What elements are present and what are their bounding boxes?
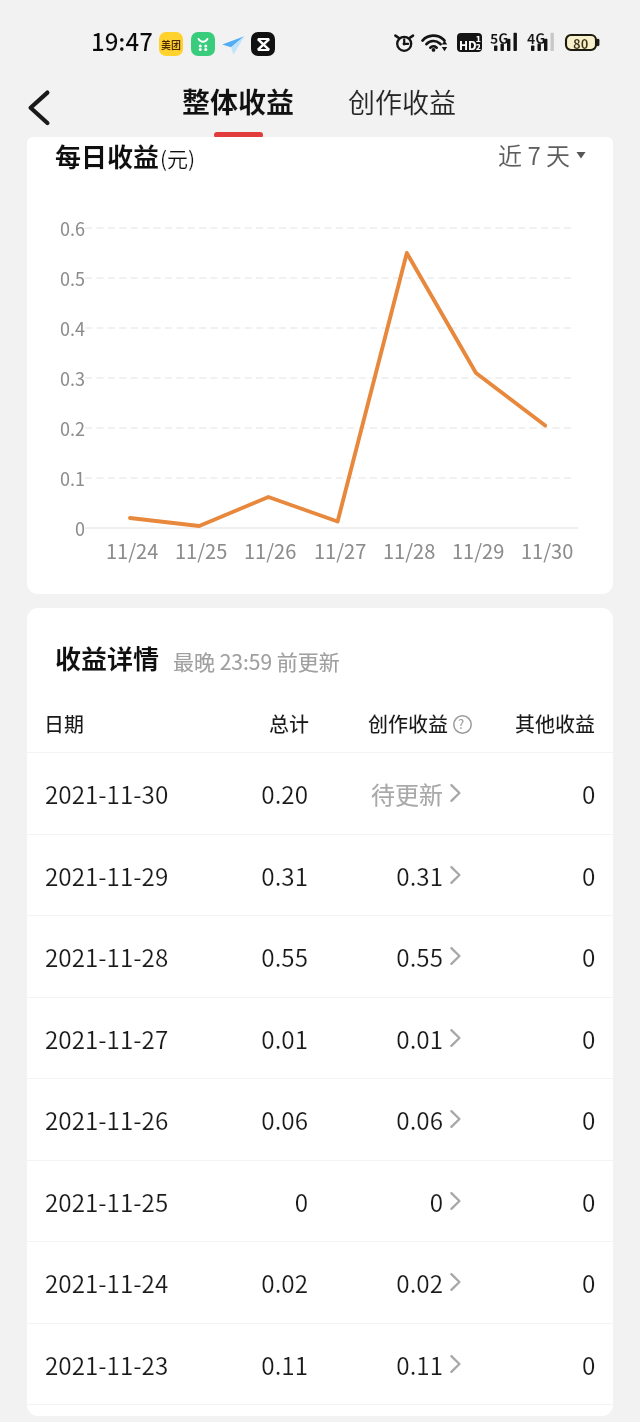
staticText: 0.11	[347, 1347, 443, 1382]
staticText: 80	[573, 34, 589, 51]
staticText: 0	[347, 1184, 443, 1219]
staticText: 0	[582, 1265, 596, 1300]
staticText: 近 7 天	[498, 137, 571, 171]
staticText: 每日收益	[55, 137, 160, 175]
staticText: 其他收益	[515, 709, 595, 738]
staticText: 11/27	[314, 536, 367, 564]
staticText: 0	[582, 1102, 596, 1137]
staticText: 0.06	[243, 1102, 308, 1137]
staticText: 0.20	[243, 776, 308, 811]
staticText: 创作收益	[348, 82, 456, 121]
staticText: 0.01	[347, 1021, 443, 1056]
staticText: 2021-11-24	[45, 1265, 169, 1300]
staticText: 0.55	[347, 939, 443, 974]
staticText: ?	[458, 714, 465, 733]
staticText: 0.1	[60, 465, 85, 491]
staticText: 创作收益	[368, 709, 448, 738]
button[interactable]: 近 7 天	[498, 137, 588, 171]
staticText: 0.6	[60, 215, 85, 241]
staticText: 0.06	[347, 1102, 443, 1137]
staticText: 11/29	[452, 536, 505, 564]
staticText: 2021-11-28	[45, 939, 169, 974]
staticText: 0.02	[347, 1265, 443, 1300]
staticText: 0.11	[243, 1347, 308, 1382]
staticText: 收益详情	[55, 639, 160, 677]
staticText: 11/30	[521, 536, 574, 564]
button[interactable]: 2021-11-24	[27, 1242, 613, 1322]
staticText: 0.3	[60, 365, 85, 391]
staticText: 2021-11-29	[45, 858, 169, 893]
button[interactable]: 2021-11-26	[27, 1079, 613, 1159]
staticText: 0.31	[243, 858, 308, 893]
staticText: (元)	[160, 143, 196, 173]
staticText: 11/28	[383, 536, 436, 564]
staticText: 美团	[161, 37, 181, 51]
staticText: 0	[582, 1021, 596, 1056]
staticText: 2021-11-23	[45, 1347, 169, 1382]
staticText: 11/25	[175, 536, 228, 564]
button[interactable]: Back	[16, 84, 62, 130]
staticText: 0	[243, 1184, 308, 1219]
staticText: 0.2	[60, 415, 85, 441]
staticText: 总计	[269, 709, 309, 738]
button[interactable]: 2021-11-23	[27, 1324, 613, 1404]
staticText: 0	[582, 1184, 596, 1219]
staticText: 2021-11-26	[45, 1102, 169, 1137]
staticText: 0.55	[243, 939, 308, 974]
button[interactable]: 2021-11-25	[27, 1161, 613, 1241]
staticText: 日期	[44, 709, 84, 738]
staticText: 0	[582, 776, 596, 811]
staticText: 5G	[490, 28, 509, 48]
staticText: 0.01	[243, 1021, 308, 1056]
staticText: 0	[582, 1347, 596, 1382]
staticText: 1	[476, 33, 481, 45]
staticText: 11/24	[106, 536, 159, 564]
button[interactable]: 2021-11-29	[27, 835, 613, 915]
staticText: 19:47	[91, 23, 153, 58]
staticText: HD	[459, 36, 477, 52]
staticText: 0.4	[60, 315, 85, 341]
button[interactable]: About creation earnings	[453, 715, 472, 734]
staticText: 0.5	[60, 265, 85, 291]
button[interactable]: 2021-11-27	[27, 998, 613, 1078]
staticText: 0	[582, 939, 596, 974]
staticText: 11/26	[244, 536, 297, 564]
staticText: 最晚 23:59 前更新	[173, 646, 340, 676]
staticText: 0.02	[243, 1265, 308, 1300]
button[interactable]: 整体收益	[170, 81, 306, 147]
staticText: 2021-11-30	[45, 776, 169, 811]
button[interactable]: 2021-11-30	[27, 753, 613, 833]
staticText: 2	[476, 41, 481, 52]
staticText: 0.31	[347, 858, 443, 893]
staticText: 2021-11-25	[45, 1184, 169, 1219]
staticText: 4G	[527, 28, 546, 48]
button[interactable]: 2021-11-28	[27, 916, 613, 996]
staticText: 整体收益	[182, 81, 295, 122]
staticText: 待更新	[347, 776, 443, 811]
staticText: 2021-11-27	[45, 1021, 169, 1056]
staticText: 0	[75, 515, 85, 541]
button[interactable]: 创作收益	[335, 82, 469, 132]
staticText: 0	[582, 858, 596, 893]
